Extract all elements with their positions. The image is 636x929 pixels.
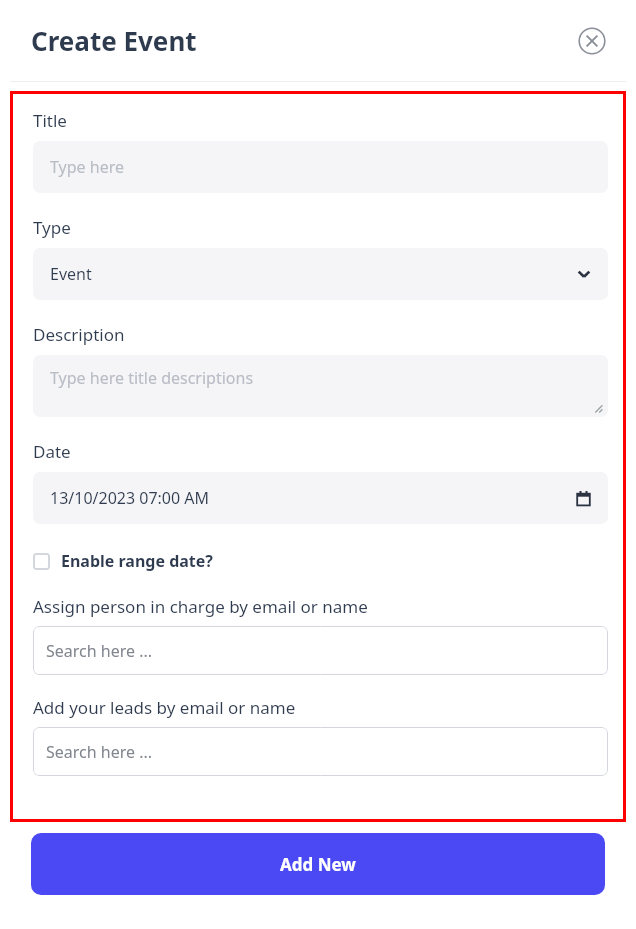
- staticText: Event: [50, 263, 92, 285]
- staticText: Enable range date?: [61, 550, 214, 572]
- button[interactable]: Search here ...: [33, 727, 608, 776]
- staticText: Type here: [50, 156, 124, 178]
- staticText: Type here title descriptions: [50, 367, 254, 389]
- staticText: Description: [33, 323, 125, 346]
- button[interactable]: Type here title descriptions: [33, 355, 608, 417]
- button[interactable]: Type here: [33, 141, 608, 193]
- staticText: Title: [33, 109, 67, 132]
- button[interactable]: 13/10/2023 07:00 AM: [33, 472, 608, 524]
- staticText: Type: [33, 216, 71, 239]
- staticText: Add your leads by email or name: [33, 696, 296, 719]
- button[interactable]: Enable range date?: [33, 547, 214, 575]
- button[interactable]: Search here ...: [33, 626, 608, 675]
- staticText: Create Event: [31, 23, 197, 58]
- staticText: 13/10/2023 07:00 AM: [50, 487, 210, 509]
- staticText: Add New: [280, 853, 356, 876]
- staticText: Date: [33, 440, 71, 463]
- other: Pick date: [576, 491, 591, 506]
- staticText: Search here ...: [46, 640, 153, 662]
- button[interactable]: Event: [33, 248, 608, 300]
- staticText: Search here ...: [46, 741, 153, 763]
- staticText: Assign person in charge by email or name: [33, 595, 368, 618]
- button[interactable]: Add New: [31, 833, 605, 895]
- button[interactable]: Close: [572, 21, 612, 61]
